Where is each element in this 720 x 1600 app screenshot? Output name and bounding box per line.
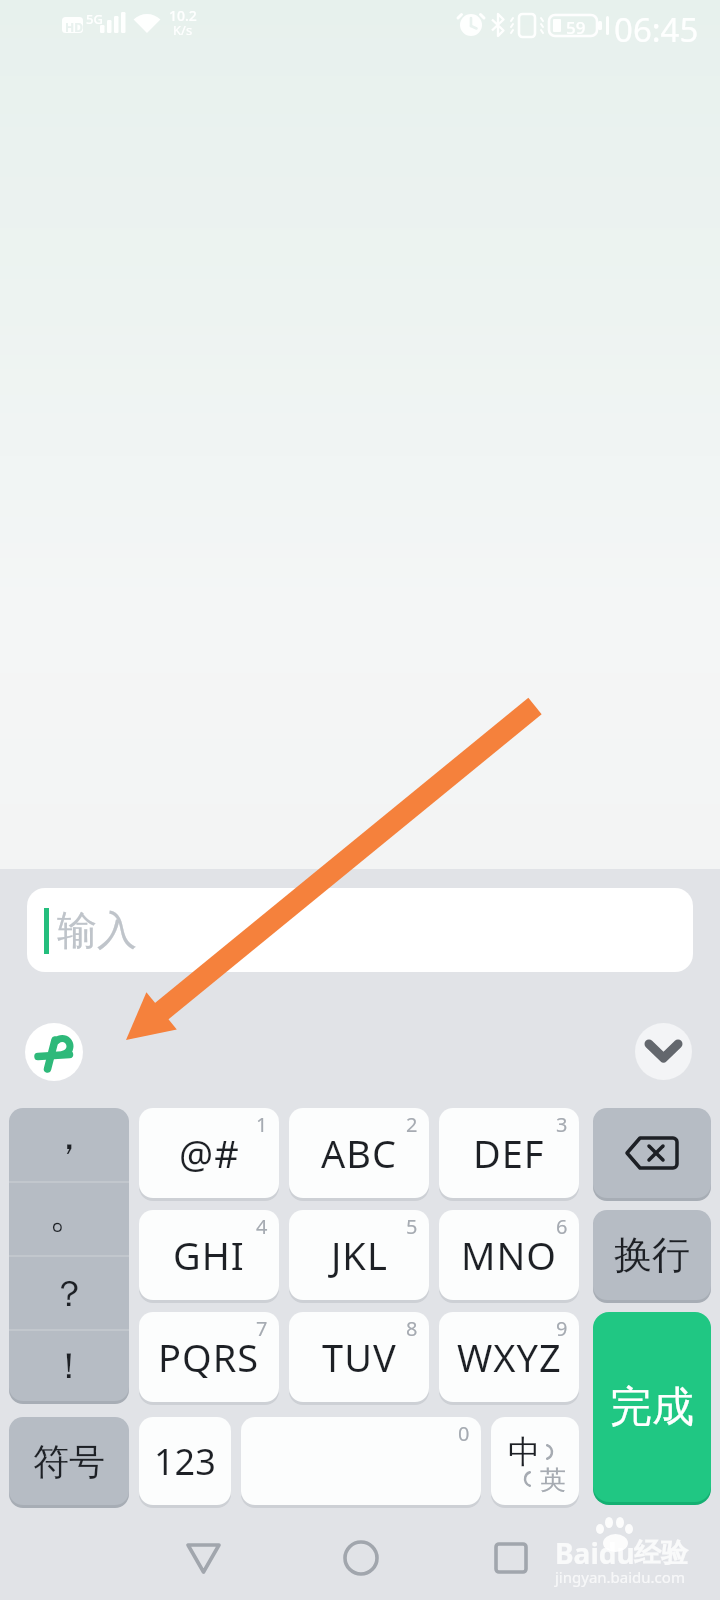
button[interactable]: 123 xyxy=(139,1417,231,1505)
staticText: GHI xyxy=(173,1229,245,1281)
staticText: HD xyxy=(65,19,83,35)
staticText: 123 xyxy=(154,1437,216,1486)
staticText: 3 xyxy=(556,1111,568,1138)
staticText: 英 xyxy=(540,1464,566,1497)
button[interactable]: 换行 xyxy=(593,1210,711,1300)
staticText: ？ xyxy=(51,1271,87,1316)
staticText: 。 xyxy=(49,1188,89,1238)
button[interactable]: 符号 xyxy=(9,1417,129,1505)
button[interactable]: 输入 xyxy=(27,888,693,972)
button[interactable] xyxy=(635,1023,692,1080)
staticText: Baidu xyxy=(555,1534,635,1572)
button[interactable]: TUV xyxy=(289,1312,429,1402)
staticText: K/s xyxy=(173,21,193,39)
staticText: jingyan.baidu.com xyxy=(555,1567,685,1587)
button[interactable]: ！ xyxy=(9,1330,129,1401)
staticText: PQRS xyxy=(158,1331,260,1383)
staticText: 8 xyxy=(406,1315,418,1342)
button[interactable]: @# xyxy=(139,1108,279,1198)
button[interactable]: 0 xyxy=(241,1417,481,1505)
staticText: ！ xyxy=(51,1343,87,1388)
staticText: 5 xyxy=(406,1213,418,1240)
staticText: 符号 xyxy=(33,1439,105,1484)
staticText: 6 xyxy=(556,1213,568,1240)
button[interactable] xyxy=(593,1108,711,1198)
staticText: TUV xyxy=(322,1331,397,1383)
staticText: ABC xyxy=(321,1127,397,1179)
staticText: ， xyxy=(49,1110,89,1160)
staticText: 经验 xyxy=(634,1536,688,1570)
button[interactable]: 。 xyxy=(9,1182,129,1256)
button[interactable]: ？ xyxy=(9,1256,129,1330)
staticText: 7 xyxy=(256,1315,268,1342)
staticText: 换行 xyxy=(614,1231,690,1279)
staticText: 输入 xyxy=(57,905,137,955)
button[interactable]: GHI xyxy=(139,1210,279,1300)
staticText: 06:45 xyxy=(614,7,699,52)
staticText: 9 xyxy=(556,1315,568,1342)
staticText: WXYZ xyxy=(457,1331,562,1383)
staticText: JKL xyxy=(331,1229,388,1281)
staticText: 2 xyxy=(406,1111,418,1138)
staticText: 中 xyxy=(508,1432,540,1472)
button[interactable]: PQRS xyxy=(139,1312,279,1402)
staticText: DEF xyxy=(473,1127,545,1179)
staticText: @# xyxy=(179,1127,240,1179)
staticText: 1 xyxy=(256,1111,268,1138)
button[interactable]: MNO xyxy=(439,1210,579,1300)
staticText: 59 xyxy=(566,16,586,39)
staticText: 5G xyxy=(86,10,103,28)
button[interactable] xyxy=(25,1023,83,1081)
button[interactable]: 完成 xyxy=(593,1312,711,1502)
button[interactable]: 中 xyxy=(491,1417,579,1505)
staticText: MNO xyxy=(461,1229,558,1281)
button[interactable]: DEF xyxy=(439,1108,579,1198)
button[interactable]: ABC xyxy=(289,1108,429,1198)
button[interactable]: ， xyxy=(9,1108,129,1182)
button[interactable]: JKL xyxy=(289,1210,429,1300)
staticText: 0 xyxy=(458,1420,470,1447)
staticText: 10.2 xyxy=(169,6,197,25)
staticText: 完成 xyxy=(610,1381,694,1434)
button[interactable]: WXYZ xyxy=(439,1312,579,1402)
staticText: 4 xyxy=(256,1213,268,1240)
